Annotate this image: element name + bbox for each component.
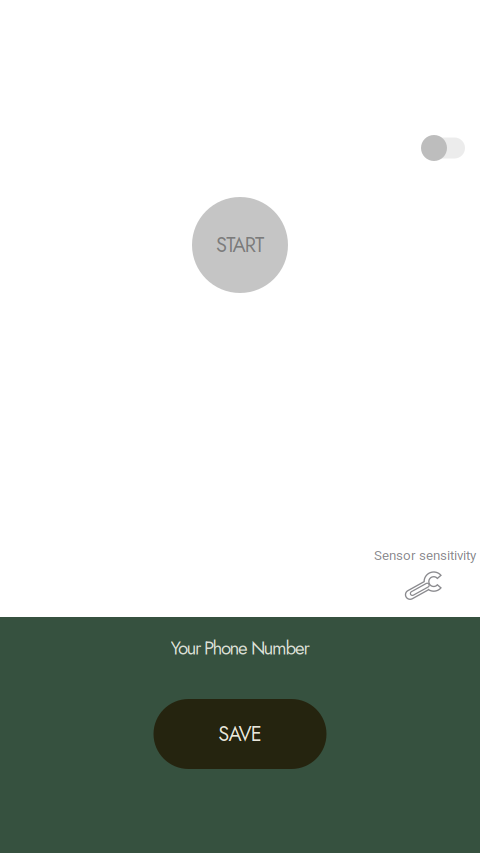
staticText: Sensor sensitivity: [374, 548, 476, 563]
staticText: START: [216, 230, 264, 259]
button[interactable]: SAVE: [153, 699, 326, 769]
button[interactable]: Sensor sensitivity: [363, 548, 480, 604]
staticText: Your Phone Number: [170, 634, 309, 661]
button[interactable]: START: [192, 197, 288, 293]
button[interactable]: Enable sensor: [421, 133, 466, 163]
staticText: SAVE: [218, 719, 262, 748]
